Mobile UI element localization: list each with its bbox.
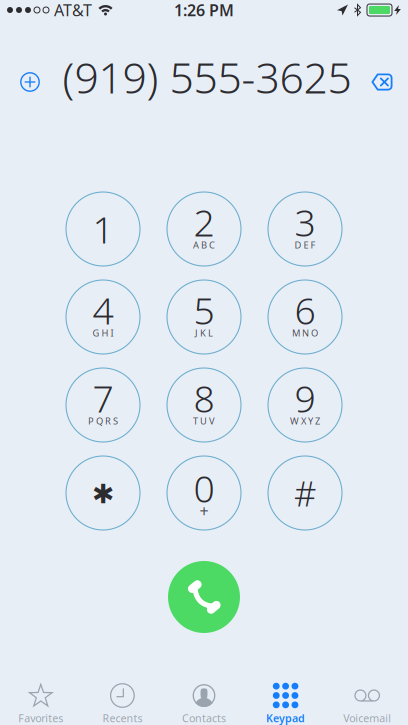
- staticText: 5: [193, 285, 214, 335]
- button[interactable]: 4: [66, 280, 140, 354]
- staticText: T U V: [193, 415, 215, 427]
- button[interactable]: Keypad: [245, 662, 326, 725]
- staticText: 2: [193, 197, 214, 247]
- button[interactable]: Contacts: [163, 662, 245, 725]
- staticText: 9: [294, 373, 315, 423]
- staticText: Favorites: [18, 711, 63, 725]
- staticText: 6: [294, 285, 315, 335]
- staticText: D E F: [294, 239, 315, 251]
- staticText: J K L: [195, 327, 213, 339]
- button[interactable]: Favorites: [0, 662, 82, 725]
- staticText: 1:26 PM: [174, 0, 234, 21]
- button[interactable]: ✱: [66, 456, 140, 530]
- staticText: +: [199, 500, 208, 522]
- button[interactable]: 9: [268, 368, 342, 442]
- button[interactable]: 6: [268, 280, 342, 354]
- button[interactable]: Recents: [82, 662, 163, 725]
- staticText: 1: [92, 204, 113, 254]
- button[interactable]: 1: [66, 192, 140, 266]
- staticText: Contacts: [182, 711, 226, 725]
- staticText: W X Y Z: [290, 415, 320, 427]
- staticText: A B C: [193, 239, 215, 251]
- staticText: G H I: [92, 327, 113, 339]
- button[interactable]: #: [268, 456, 342, 530]
- staticText: 3: [294, 197, 315, 247]
- button[interactable]: 5: [167, 280, 241, 354]
- button[interactable]: 2: [167, 192, 241, 266]
- staticText: AT&T: [54, 0, 92, 21]
- staticText: (919) 555-3625: [62, 49, 351, 105]
- button[interactable]: Call: [168, 561, 240, 633]
- button[interactable]: Add number to contacts: [8, 60, 52, 104]
- staticText: P Q R S: [88, 415, 118, 427]
- staticText: Recents: [102, 711, 142, 725]
- staticText: 8: [193, 373, 214, 423]
- staticText: Keypad: [266, 711, 305, 725]
- button[interactable]: 0: [167, 456, 241, 530]
- staticText: 7: [92, 373, 113, 423]
- staticText: M N O: [292, 327, 318, 339]
- button[interactable]: 7: [66, 368, 140, 442]
- staticText: 0: [193, 463, 214, 513]
- staticText: 4: [92, 285, 113, 335]
- staticText: ✱: [92, 479, 114, 509]
- button[interactable]: Voicemail: [326, 662, 408, 725]
- staticText: Voicemail: [343, 711, 391, 725]
- staticText: #: [294, 470, 316, 516]
- button[interactable]: Delete last digit: [360, 60, 404, 104]
- button[interactable]: 3: [268, 192, 342, 266]
- button[interactable]: 8: [167, 368, 241, 442]
